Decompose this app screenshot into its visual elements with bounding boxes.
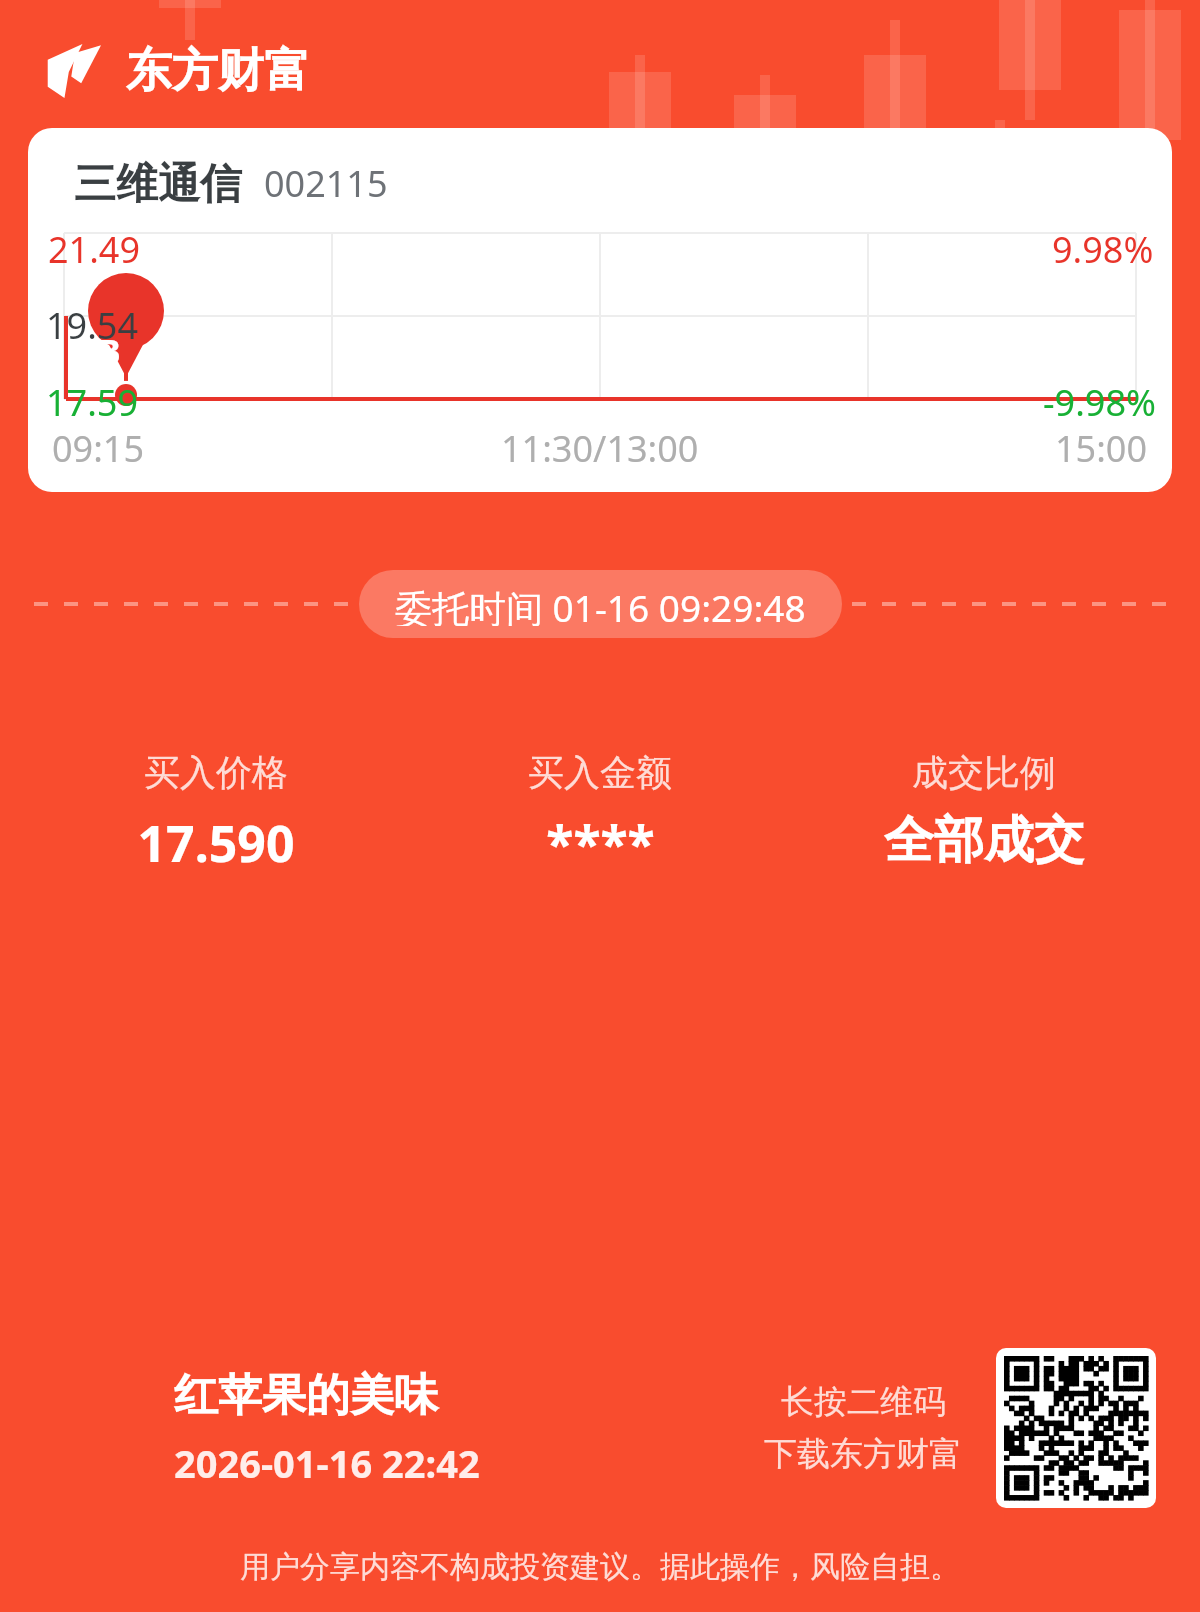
staticText: B — [98, 328, 121, 374]
staticText: 成交比例 — [912, 750, 1056, 795]
button[interactable]: 下载东方财富二维码 — [996, 1348, 1156, 1508]
staticText: 17.59 — [46, 378, 139, 427]
staticText: 买入金额 — [528, 750, 672, 795]
button[interactable]: 委托时间 01-16 09:29:48 — [359, 570, 842, 638]
staticText: 11:30/13:00 — [501, 424, 699, 473]
staticText: 长按二维码 — [781, 1381, 946, 1423]
staticText: 用户分享内容不构成投资建议。据此操作，风险自担。 — [240, 1548, 960, 1586]
staticText: 09:15 — [52, 424, 145, 473]
staticText: 全部成交 — [884, 809, 1084, 872]
staticText: 17.590 — [137, 809, 295, 877]
staticText: -9.98% — [1043, 378, 1156, 427]
staticText: **** — [546, 809, 655, 877]
staticText: 002115 — [264, 159, 388, 208]
button[interactable]: 买入金额 — [408, 750, 792, 877]
button[interactable]: 买入价格 — [24, 750, 408, 877]
staticText: 15:00 — [1055, 424, 1148, 473]
staticText: 买入价格 — [144, 750, 288, 795]
staticText: 19.54 — [46, 301, 139, 350]
staticText: 东方财富 — [126, 42, 310, 100]
staticText: 9.98% — [1052, 225, 1154, 274]
staticText: 三维通信 — [74, 158, 242, 211]
staticText: 21.49 — [48, 225, 141, 274]
staticText: 2026-01-16 22:42 — [174, 1437, 480, 1489]
staticText: 下载东方财富 — [764, 1433, 962, 1475]
staticText: 红苹果的美味 — [174, 1368, 438, 1423]
button[interactable]: 成交比例 — [792, 750, 1176, 872]
staticText: 委托时间 01-16 09:29:48 — [395, 582, 806, 626]
